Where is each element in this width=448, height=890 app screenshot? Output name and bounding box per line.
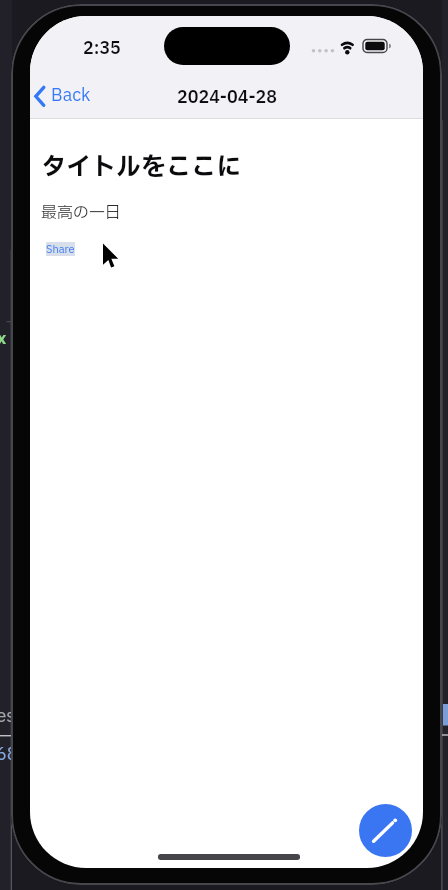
staticText: タイトルをここに	[41, 149, 242, 186]
staticText: Back	[51, 83, 91, 108]
button[interactable]: Share	[46, 242, 75, 256]
button[interactable]: Back	[32, 80, 122, 114]
button[interactable]	[359, 804, 412, 857]
staticText: 2:35	[83, 36, 121, 60]
staticText: x	[0, 327, 7, 351]
staticText: 2024-04-28	[177, 85, 278, 110]
staticText: es	[0, 703, 16, 730]
staticText: 最高の一日	[41, 201, 122, 225]
staticText: 68	[0, 742, 18, 767]
staticText: Share	[46, 242, 75, 256]
